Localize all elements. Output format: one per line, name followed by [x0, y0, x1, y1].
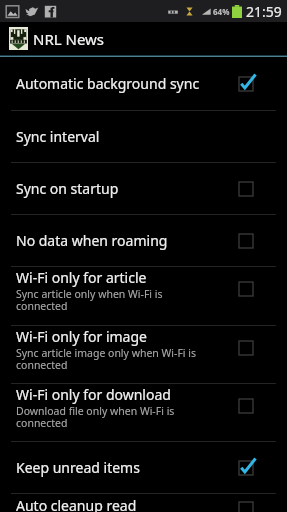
staticText: Wi-Fi only for article: [16, 268, 147, 287]
staticText: Sync article only when Wi-Fi is connecte…: [16, 287, 163, 313]
button[interactable]: Sync interval: [0, 111, 287, 162]
staticText: 64%: [213, 6, 230, 17]
staticText: 21:59: [246, 2, 282, 21]
button[interactable]: Wi-Fi only for article: [0, 267, 287, 325]
button[interactable]: Wi-Fi only for download: [0, 384, 287, 441]
staticText: Wi-Fi only for image: [16, 327, 147, 346]
button[interactable]: Keep unread items: [0, 442, 287, 493]
button[interactable]: Auto cleanup read: [0, 494, 287, 512]
staticText: Download file only when Wi-Fi is connect…: [16, 404, 175, 430]
staticText: Sync on startup: [16, 179, 119, 198]
button[interactable]: NRL News: [0, 22, 287, 55]
staticText: Sync article image only when Wi-Fi is co…: [16, 346, 197, 372]
button[interactable]: Sync on startup: [0, 163, 287, 214]
staticText: Sync interval: [16, 127, 100, 146]
button[interactable]: Wi-Fi only for image: [0, 326, 287, 383]
staticText: NRL News: [33, 29, 105, 49]
staticText: Automatic background sync: [16, 74, 200, 93]
staticText: Keep unread items: [16, 458, 140, 477]
button[interactable]: Automatic background sync: [0, 57, 287, 110]
button[interactable]: No data when roaming: [0, 215, 287, 266]
staticText: Auto cleanup read: [16, 496, 137, 512]
staticText: Wi-Fi only for download: [16, 385, 171, 404]
staticText: No data when roaming: [16, 231, 168, 250]
